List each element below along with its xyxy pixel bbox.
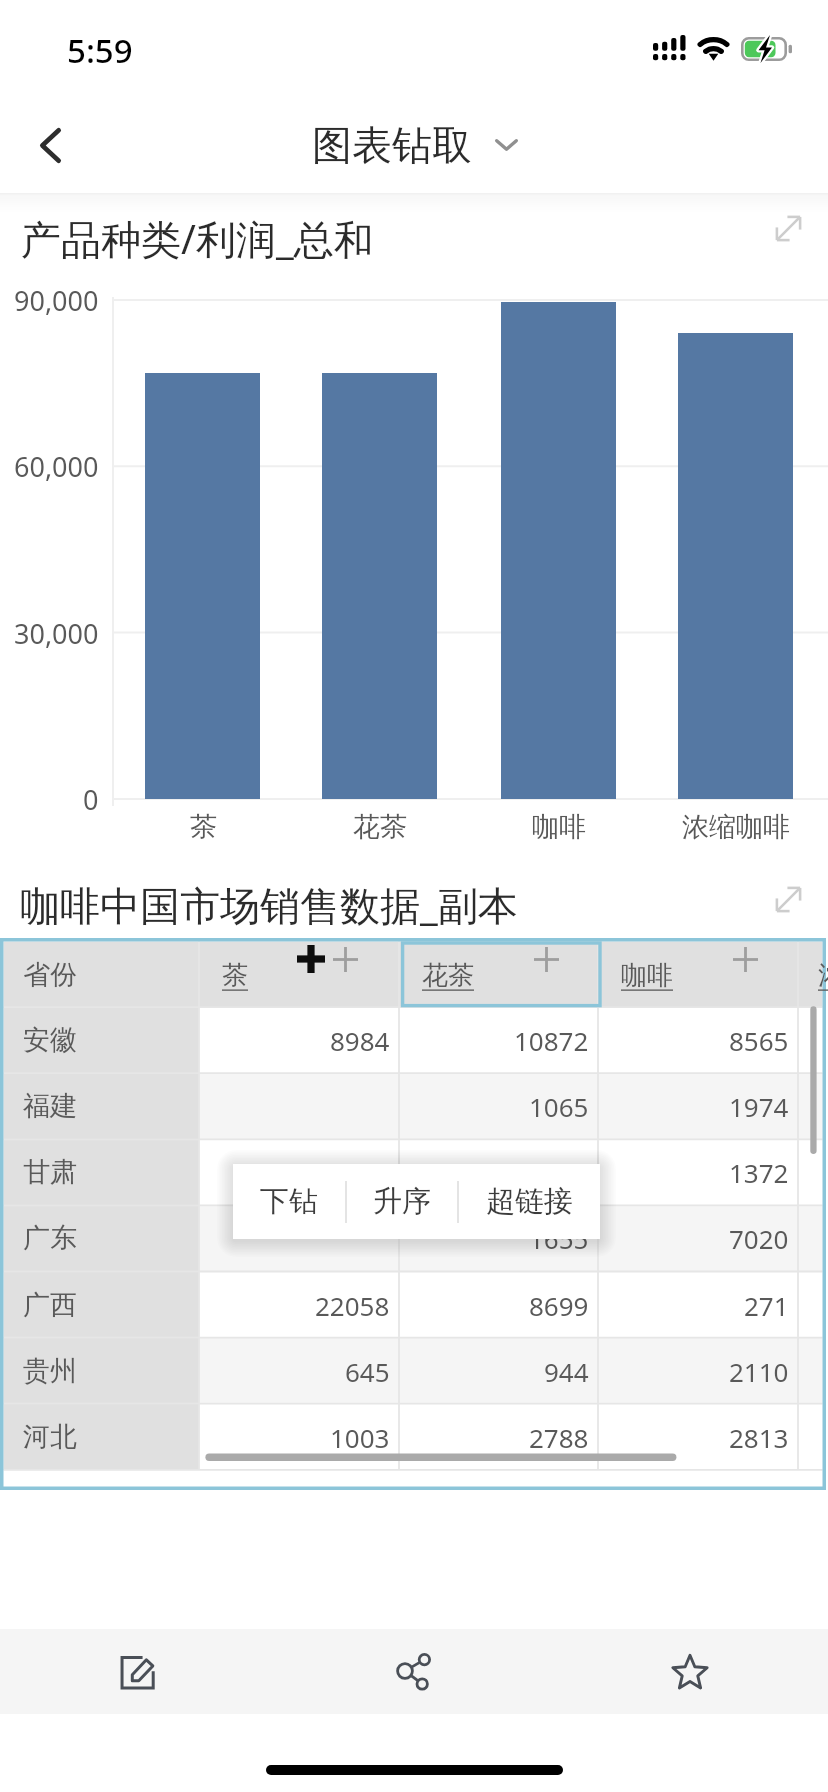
staticText: 5:59 bbox=[67, 28, 133, 73]
staticText: 升序 bbox=[373, 1183, 431, 1220]
button[interactable]: Expand table bbox=[773, 884, 803, 914]
button[interactable]: 升序 bbox=[347, 1164, 457, 1239]
button[interactable]: Share bbox=[276, 1629, 552, 1714]
staticText: 1974 bbox=[729, 1089, 789, 1124]
button[interactable]: 贵州 bbox=[4, 1338, 823, 1404]
button[interactable]: Edit bbox=[0, 1629, 276, 1714]
button[interactable]: 甘肃 bbox=[4, 1139, 823, 1205]
staticText: 271 bbox=[744, 1288, 789, 1323]
button[interactable]: Back bbox=[5, 100, 95, 190]
button[interactable]: 咖啡 bbox=[598, 942, 797, 1008]
staticText: 60,000 bbox=[14, 448, 99, 485]
staticText: 福建 bbox=[23, 1089, 77, 1123]
staticText: 30,000 bbox=[14, 615, 99, 652]
staticText: 2813 bbox=[729, 1420, 789, 1455]
button[interactable]: 广西 bbox=[4, 1272, 823, 1338]
button[interactable]: 茶 bbox=[199, 942, 398, 1008]
staticText: 8699 bbox=[529, 1288, 589, 1323]
staticText: 90,000 bbox=[14, 282, 99, 319]
staticText: 茶 bbox=[190, 810, 217, 844]
staticText: 1372 bbox=[729, 1155, 789, 1190]
staticText: 产品种类/利润_总和 bbox=[21, 211, 374, 266]
staticText: 1065 bbox=[529, 1089, 589, 1124]
staticText: 浓 bbox=[818, 959, 828, 992]
staticText: 8984 bbox=[330, 1023, 390, 1058]
button[interactable]: Expand chart bbox=[773, 213, 803, 243]
staticText: 咖啡中国市场销售数据_副本 bbox=[20, 877, 518, 932]
staticText: 超链接 bbox=[486, 1183, 573, 1220]
staticText: 7020 bbox=[729, 1221, 789, 1256]
staticText: 2110 bbox=[729, 1354, 789, 1389]
button[interactable]: 省份 bbox=[4, 942, 200, 1008]
staticText: 广西 bbox=[23, 1288, 77, 1322]
staticText: 1003 bbox=[330, 1420, 390, 1455]
staticText: 花茶 bbox=[353, 810, 407, 844]
staticText: 省份 bbox=[23, 958, 77, 992]
staticText: 咖啡 bbox=[621, 959, 673, 992]
staticText: 0 bbox=[83, 781, 99, 818]
staticText: 花茶 bbox=[422, 959, 474, 992]
staticText: 944 bbox=[544, 1354, 589, 1389]
button[interactable]: 花茶 bbox=[399, 942, 598, 1008]
button[interactable]: 广东 bbox=[4, 1205, 823, 1271]
staticText: 图表钻取 bbox=[312, 120, 472, 170]
button[interactable]: More options bbox=[484, 122, 529, 167]
button[interactable]: 安徽 bbox=[4, 1007, 823, 1073]
staticText: 咖啡 bbox=[532, 810, 586, 844]
staticText: 2788 bbox=[529, 1420, 589, 1455]
staticText: 10872 bbox=[514, 1023, 589, 1058]
button[interactable]: 福建 bbox=[4, 1073, 823, 1139]
staticText: 下钻 bbox=[260, 1183, 318, 1220]
button[interactable]: 河北 bbox=[4, 1404, 823, 1470]
button[interactable]: Favorite bbox=[552, 1629, 828, 1714]
staticText: 甘肃 bbox=[23, 1155, 77, 1189]
staticText: 浓缩咖啡 bbox=[682, 810, 790, 844]
staticText: 河北 bbox=[23, 1420, 77, 1454]
staticText: 贵州 bbox=[23, 1354, 77, 1388]
staticText: 1655 bbox=[529, 1221, 589, 1256]
staticText: 广东 bbox=[23, 1221, 77, 1255]
button[interactable]: 超链接 bbox=[459, 1164, 600, 1239]
staticText: 安徽 bbox=[23, 1023, 77, 1057]
button[interactable]: 下钻 bbox=[233, 1164, 345, 1239]
staticText: 645 bbox=[345, 1354, 390, 1389]
staticText: 22058 bbox=[315, 1288, 390, 1323]
staticText: 茶 bbox=[222, 959, 248, 992]
staticText: 8565 bbox=[729, 1023, 789, 1058]
